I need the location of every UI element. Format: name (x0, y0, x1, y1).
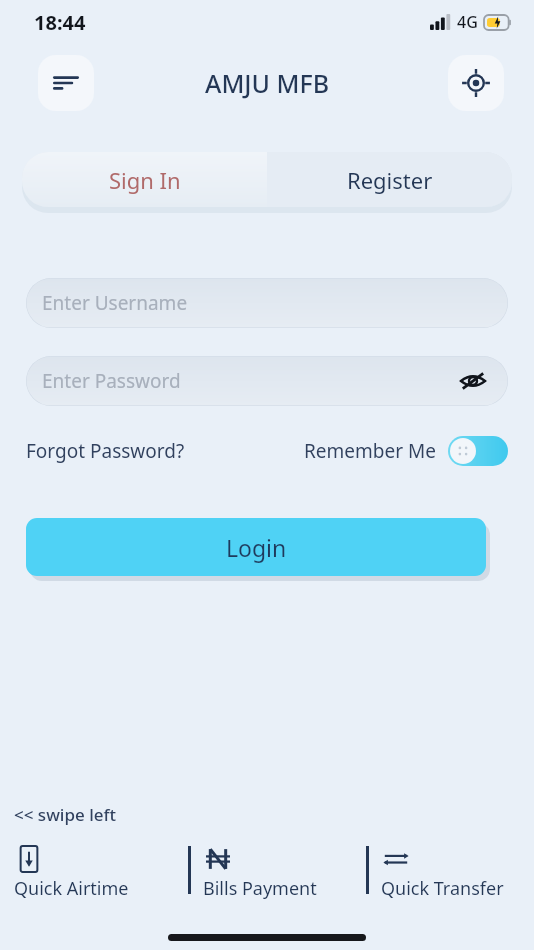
button[interactable]: Enter Username (26, 278, 508, 328)
staticText: << swipe left (14, 803, 117, 826)
button[interactable]: Show password (456, 364, 490, 398)
button[interactable]: Location (448, 55, 504, 111)
button[interactable]: Sign In (22, 152, 267, 207)
staticText: 18:44 (34, 9, 86, 36)
staticText: AMJU MFB (205, 66, 330, 100)
staticText: Bills Payment (203, 876, 317, 901)
staticText: Login (226, 532, 287, 563)
button[interactable]: Bills Payment (178, 844, 356, 901)
button[interactable]: Forgot Password? (26, 438, 185, 464)
button[interactable]: Remember Me (304, 436, 508, 466)
button[interactable]: Register (267, 152, 512, 207)
button[interactable]: Quick Transfer (356, 844, 534, 901)
button[interactable]: Enter Password (26, 356, 508, 406)
staticText: Forgot Password? (26, 438, 185, 464)
staticText: Enter Password (42, 368, 181, 394)
staticText: Sign In (109, 165, 181, 195)
staticText: Register (347, 165, 433, 195)
button[interactable]: Menu (38, 55, 94, 111)
staticText: Enter Username (42, 290, 188, 316)
staticText: Remember Me (304, 438, 436, 464)
staticText: Quick Transfer (381, 876, 504, 901)
button[interactable]: Quick Airtime (0, 844, 178, 901)
staticText: Quick Airtime (14, 876, 129, 901)
staticText: 4G (457, 11, 478, 33)
button[interactable]: Login (26, 518, 486, 576)
